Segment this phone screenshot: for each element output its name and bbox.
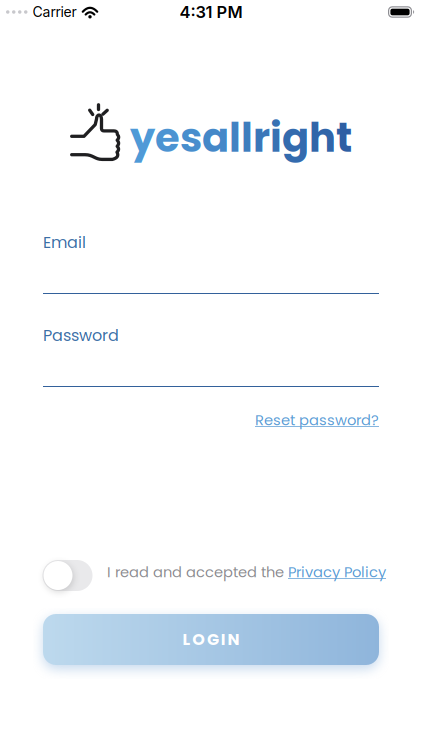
staticText: I read and accepted the: [107, 562, 288, 582]
staticText: r: [253, 110, 270, 165]
staticText: l: [229, 110, 241, 165]
staticText: Email: [43, 231, 86, 253]
staticText: s: [180, 110, 202, 165]
staticText: g: [282, 110, 309, 165]
staticText: l: [241, 110, 253, 165]
staticText: Carrier: [32, 3, 76, 20]
button[interactable]: Reset password?: [255, 410, 379, 430]
button[interactable]: LOGIN: [43, 614, 379, 665]
staticText: Password: [43, 324, 119, 346]
staticText: y: [130, 110, 155, 165]
staticText: Reset password?: [255, 410, 379, 430]
staticText: LOGIN: [182, 629, 240, 650]
staticText: h: [309, 110, 336, 165]
button[interactable]: Privacy Policy: [288, 562, 386, 582]
button[interactable]: I read and accepted the Privacy Policy: [42, 560, 92, 591]
staticText: a: [202, 110, 229, 165]
staticText: 4:31 PM: [179, 2, 242, 22]
staticText: t: [336, 110, 352, 165]
staticText: Privacy Policy: [288, 562, 386, 582]
staticText: e: [155, 110, 180, 165]
staticText: i: [270, 110, 282, 165]
